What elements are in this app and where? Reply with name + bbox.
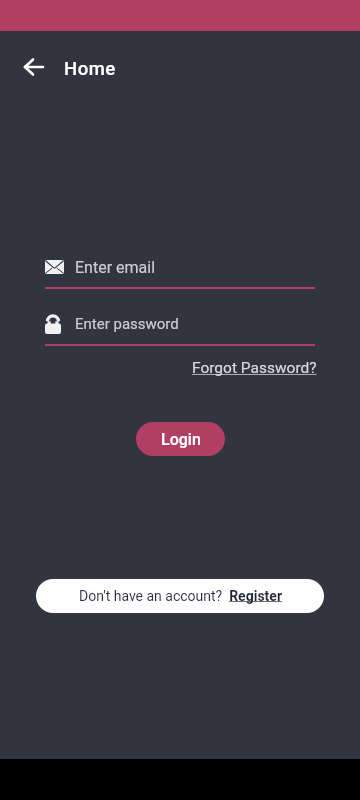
staticText: Don't have an account? Register [79, 588, 282, 604]
button[interactable]: Login [136, 422, 225, 456]
button[interactable]: Enter email [45, 256, 315, 278]
button[interactable]: Forgot Password? [192, 359, 317, 377]
button[interactable]: Don't have an account? Register [36, 579, 324, 613]
staticText: Enter password [75, 315, 179, 333]
button[interactable] [24, 59, 44, 75]
staticText: Home [64, 58, 116, 80]
button[interactable]: Enter password [45, 313, 315, 335]
staticText: Login [161, 430, 201, 449]
staticText: Enter email [75, 258, 156, 277]
